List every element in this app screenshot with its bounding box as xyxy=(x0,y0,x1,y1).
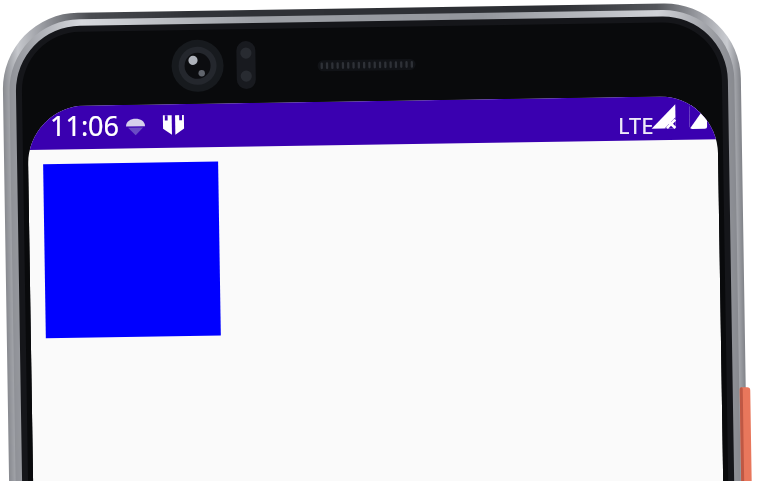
button[interactable]: Blue view xyxy=(50,159,225,333)
staticText: 11:06 xyxy=(50,107,120,139)
staticText: LTE xyxy=(618,110,654,138)
button[interactable]: LTE network xyxy=(618,110,664,138)
button[interactable]: Clock 11:06 xyxy=(50,107,136,139)
